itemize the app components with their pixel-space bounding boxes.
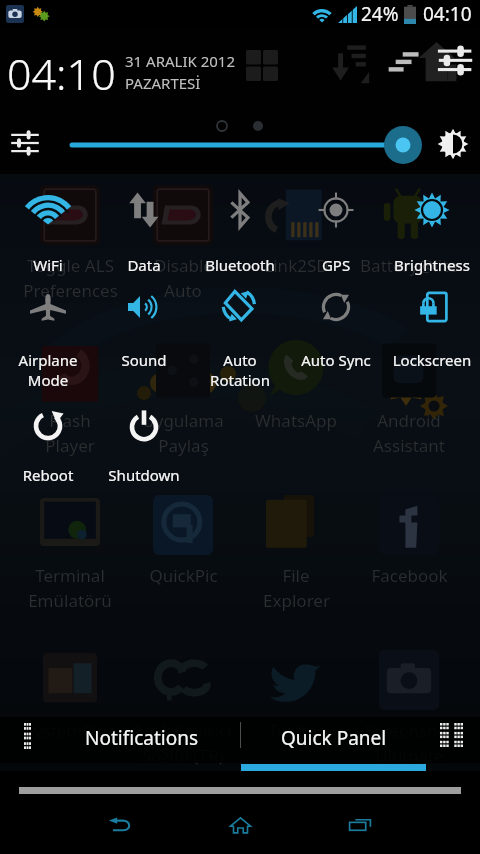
button[interactable]: More options — [11, 717, 43, 755]
staticText: Terminal — [35, 564, 105, 587]
staticText: Sesli Çevirici — [134, 719, 232, 742]
staticText: Link2SD — [264, 254, 329, 277]
staticText: Auto — [164, 279, 202, 302]
staticText: 04:10 — [7, 44, 116, 103]
staticText: Shutdown — [96, 465, 192, 485]
staticText: Assistant — [373, 434, 445, 457]
button[interactable]: GPS — [288, 187, 384, 297]
staticText: WhatsApp — [255, 409, 337, 432]
button[interactable]: Auto Sync — [288, 284, 384, 392]
staticText: Bluetooth — [192, 255, 288, 275]
staticText: Uygulama — [142, 409, 224, 432]
staticText: Airplane Mode — [0, 350, 96, 390]
staticText: Paylaş — [158, 434, 209, 457]
button[interactable]: Quick Panel — [241, 714, 426, 762]
staticText: QuickPic — [149, 564, 218, 587]
button[interactable]: Sound — [96, 286, 192, 392]
staticText: Ultimate — [375, 744, 444, 767]
staticText: Android — [377, 409, 441, 432]
staticText: Auto Sync — [288, 350, 384, 370]
staticText: Twitter — [268, 719, 324, 742]
staticText: Sözlük(TR) — [142, 744, 224, 767]
staticText: Flash — [49, 409, 91, 432]
staticText: 04:10 — [423, 1, 472, 27]
staticText: Notifications — [85, 725, 199, 751]
button[interactable]: App grid — [238, 41, 286, 89]
staticText: Player — [45, 434, 95, 457]
button[interactable]: All apps — [434, 718, 468, 752]
staticText: Brightness — [384, 255, 480, 275]
staticText: SystemClea — [24, 719, 117, 742]
button[interactable]: Bluetooth — [192, 187, 288, 297]
staticText: Toggle ALS — [27, 254, 114, 277]
button[interactable]: WiFi — [0, 191, 96, 297]
staticText: Battery@lite — [360, 254, 458, 277]
staticText: Facebook — [371, 564, 448, 587]
staticText: Lockscreen — [384, 350, 480, 370]
staticText: 31 ARALIK 2012 — [125, 51, 236, 71]
staticText: GPS — [288, 255, 384, 275]
staticText: Screenshot — [365, 719, 454, 742]
button[interactable]: Airplane Mode — [0, 285, 96, 392]
staticText: PAZARTESİ — [125, 73, 201, 93]
button[interactable]: Recents — [323, 800, 397, 850]
staticText: Auto Rotation — [192, 350, 288, 390]
staticText: 24% — [361, 1, 399, 27]
button[interactable]: Brightness — [384, 186, 480, 297]
button[interactable]: Brightness settings — [2, 120, 48, 166]
button[interactable]: Auto Rotation — [192, 284, 288, 392]
staticText: Reboot — [0, 465, 96, 485]
staticText: Explorer — [263, 589, 330, 612]
staticText: Data — [96, 255, 192, 275]
button[interactable]: Reboot — [0, 400, 96, 507]
staticText: Quick Panel — [281, 725, 387, 751]
staticText: Sound — [96, 350, 192, 370]
button[interactable]: Lockscreen — [384, 284, 480, 392]
button[interactable]: Settings — [384, 34, 476, 88]
staticText: Disable — [154, 254, 213, 277]
staticText: Preferences — [23, 279, 118, 302]
staticText: File — [282, 564, 310, 587]
staticText: Emülatörü — [28, 589, 112, 612]
button[interactable]: Sort — [324, 38, 374, 88]
button[interactable]: Data — [96, 187, 192, 297]
staticText: WiFi — [0, 255, 96, 275]
button[interactable]: Back — [83, 800, 157, 850]
button[interactable]: Shutdown — [96, 400, 192, 507]
button[interactable]: Home — [203, 800, 277, 850]
button[interactable]: Notifications — [44, 714, 240, 762]
button[interactable]: Auto brightness — [430, 121, 476, 167]
